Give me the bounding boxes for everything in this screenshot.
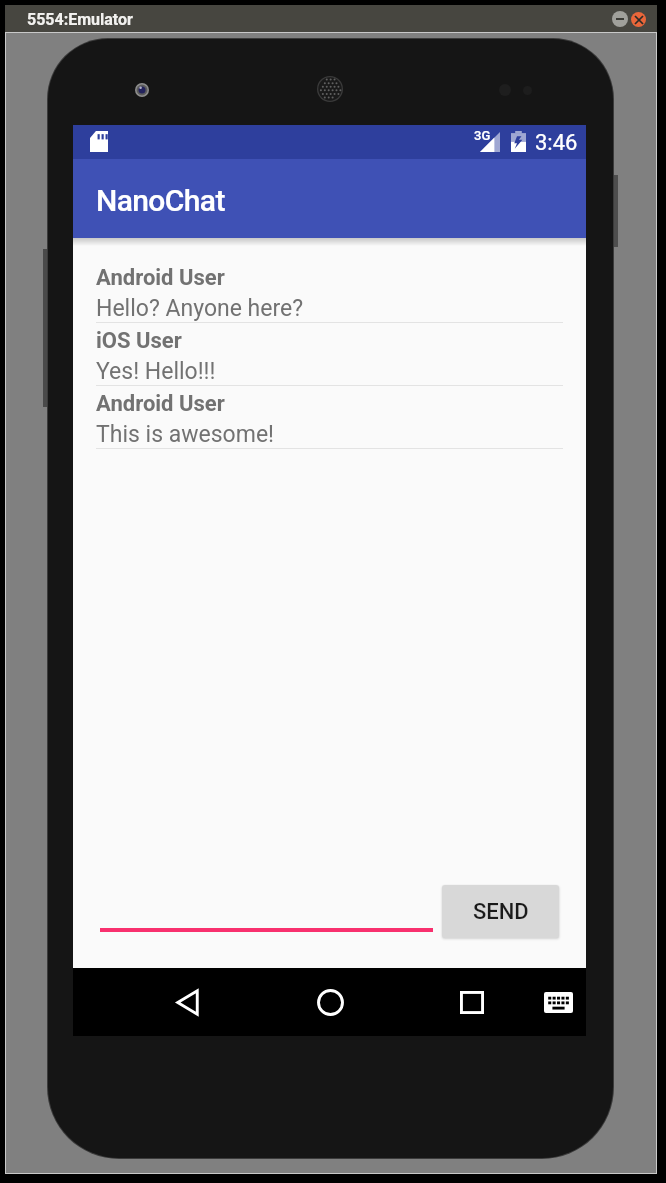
button[interactable]: SEND bbox=[442, 885, 559, 938]
staticText: SEND bbox=[473, 899, 529, 925]
button[interactable]: Close bbox=[631, 12, 646, 27]
button[interactable]: Minimise bbox=[612, 11, 628, 27]
button[interactable]: Back bbox=[159, 968, 215, 1036]
staticText: NanoChat bbox=[96, 183, 225, 218]
staticText: iOS User bbox=[96, 328, 182, 354]
button[interactable]: iOS User bbox=[73, 323, 586, 386]
staticText: 3G bbox=[474, 128, 491, 143]
staticText: Yes! Hello!!! bbox=[96, 358, 216, 385]
staticText: 5554:Emulator bbox=[27, 10, 133, 29]
staticText: This is awesome! bbox=[96, 421, 275, 448]
staticText: Android User bbox=[96, 265, 225, 291]
staticText: 3:46 bbox=[535, 130, 578, 156]
button[interactable]: Android User bbox=[73, 386, 586, 449]
button[interactable]: Home bbox=[302, 968, 358, 1036]
staticText: Hello? Anyone here? bbox=[96, 295, 304, 322]
button[interactable]: Keyboard bbox=[530, 968, 586, 1036]
staticText: Android User bbox=[96, 391, 225, 417]
button[interactable]: Android User bbox=[73, 260, 586, 323]
button[interactable]: Recent apps bbox=[444, 968, 500, 1036]
